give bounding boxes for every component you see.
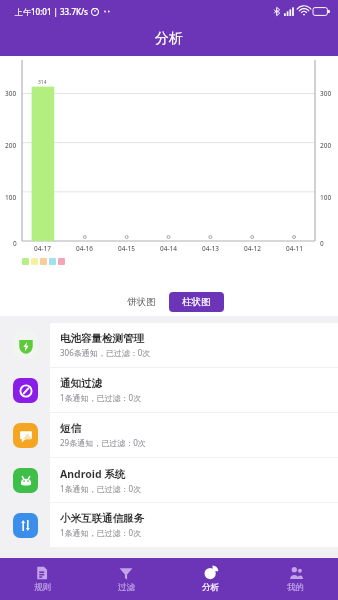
- staticText: 306条通知，已过滤：0次: [60, 347, 151, 358]
- button[interactable]: 过滤: [84, 558, 168, 600]
- staticText: 电池容量检测管理: [60, 332, 144, 345]
- staticText: 04-12: [244, 244, 261, 253]
- staticText: 饼状图: [127, 296, 156, 308]
- staticText: 04-15: [118, 244, 135, 253]
- staticText: 过滤: [118, 582, 135, 593]
- staticText: 300: [320, 89, 332, 98]
- staticText: 300: [5, 89, 17, 98]
- staticText: 04-13: [202, 244, 219, 253]
- staticText: 规则: [34, 582, 51, 593]
- button[interactable]: 通知过滤: [0, 368, 338, 412]
- staticText: 200: [320, 141, 332, 150]
- staticText: 1条通知，已过滤：0次: [60, 483, 142, 494]
- staticText: 0: [320, 239, 324, 248]
- button[interactable]: 柱状图: [169, 292, 224, 312]
- button[interactable]: 小米互联通信服务: [0, 503, 338, 547]
- staticText: 0: [13, 239, 17, 248]
- staticText: 我的: [287, 582, 304, 593]
- staticText: 04-16: [76, 244, 93, 253]
- staticText: 04-11: [286, 244, 303, 253]
- staticText: 1条通知，已过滤：0次: [60, 527, 142, 538]
- button[interactable]: 短信: [0, 413, 338, 457]
- staticText: 04-14: [160, 244, 177, 253]
- button[interactable]: 电池容量检测管理: [0, 323, 338, 367]
- staticText: 04-17: [34, 244, 51, 253]
- staticText: 小米互联通信服务: [60, 512, 144, 525]
- button[interactable]: 规则: [0, 558, 84, 600]
- staticText: 1条通知，已过滤：0次: [60, 392, 142, 403]
- button[interactable]: 分析: [168, 558, 253, 600]
- staticText: 200: [5, 141, 17, 150]
- button[interactable]: 我的: [253, 558, 338, 600]
- staticText: 314: [38, 79, 47, 86]
- button[interactable]: Android 系统: [0, 458, 338, 502]
- staticText: Android 系统: [60, 467, 126, 481]
- staticText: 分析: [155, 30, 183, 48]
- staticText: 短信: [60, 422, 81, 435]
- staticText: 29条通知，已过滤：0次: [60, 437, 146, 448]
- staticText: 分析: [202, 582, 219, 593]
- staticText: 上午10:01 | 33.7K/s: [15, 6, 88, 17]
- staticText: 通知过滤: [60, 377, 102, 390]
- button[interactable]: 饼状图: [114, 292, 169, 312]
- staticText: 100: [320, 193, 332, 202]
- staticText: 柱状图: [182, 296, 211, 308]
- staticText: 100: [5, 193, 17, 202]
